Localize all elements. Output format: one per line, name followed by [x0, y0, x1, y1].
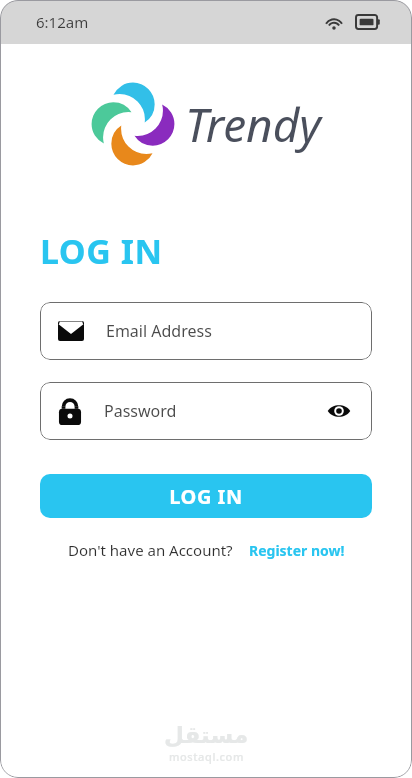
button[interactable]: Register now! — [249, 541, 345, 560]
staticText: LOG IN — [169, 483, 243, 510]
staticText: Trendy — [185, 93, 321, 156]
staticText: Password — [104, 400, 324, 422]
button[interactable]: Show password — [324, 396, 354, 426]
button[interactable]: Password — [40, 382, 372, 440]
staticText: 6:12am — [36, 12, 89, 32]
staticText: mostaql.com — [169, 749, 244, 764]
button[interactable]: LOG IN — [40, 474, 372, 518]
staticText: مستقل — [164, 722, 249, 749]
staticText: Don't have an Account? — [68, 540, 233, 560]
staticText: Register now! — [249, 541, 345, 560]
staticText: LOG IN — [40, 228, 163, 274]
button[interactable]: Email Address — [40, 302, 372, 360]
staticText: Email Address — [106, 320, 354, 342]
